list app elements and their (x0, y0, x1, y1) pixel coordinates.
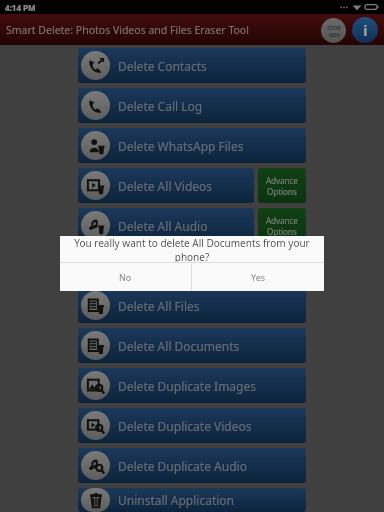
button[interactable]: Delete Duplicate Images (78, 368, 306, 403)
button[interactable]: Delete Call Log (78, 88, 306, 123)
staticText: Delete Call Log (118, 98, 203, 114)
button[interactable]: Advance (258, 168, 306, 203)
staticText: Delete Duplicate Videos (118, 418, 252, 434)
staticText: Options (267, 226, 297, 237)
staticText: Delete Duplicate Images (118, 378, 256, 394)
staticText: You really want to delete All Documents … (60, 236, 324, 262)
staticText: Delete WhatsApp Files (118, 138, 244, 154)
staticText: Advance (266, 175, 298, 186)
staticText: Delete All Images (118, 258, 217, 274)
staticText: No (119, 271, 132, 283)
staticText: Delete All Documents (118, 338, 240, 354)
button[interactable]: Delete All Files (78, 288, 306, 323)
button[interactable]: Delete Contacts (78, 48, 306, 83)
staticText: Advance (266, 255, 298, 266)
button[interactable]: Info (352, 17, 378, 43)
staticText: Delete All Videos (118, 178, 213, 194)
staticText: ADS (329, 31, 340, 38)
button[interactable]: Delete All Images (78, 248, 254, 283)
button[interactable]: Advance (258, 208, 306, 243)
staticText: Delete Duplicate Audio (118, 458, 247, 474)
staticText: Options (267, 186, 297, 197)
staticText: Delete All Files (118, 298, 200, 314)
button[interactable]: Advance (258, 248, 306, 283)
button[interactable]: Uninstall Application (78, 488, 306, 512)
staticText: Smart Delete: Photos Videos and Files Er… (6, 23, 249, 37)
staticText: Uninstall Application (118, 492, 235, 508)
staticText: Delete All Audio (118, 218, 208, 234)
staticText: Yes (251, 271, 266, 283)
staticText: 4:14 PM (5, 2, 36, 13)
button[interactable]: Delete All Documents (78, 328, 306, 363)
button[interactable]: Stop Ads (321, 18, 346, 43)
button[interactable]: Delete Duplicate Videos (78, 408, 306, 443)
button[interactable]: Delete WhatsApp Files (78, 128, 306, 163)
button[interactable]: No (60, 263, 191, 291)
button[interactable]: Delete All Audio (78, 208, 254, 243)
button[interactable]: Delete Duplicate Audio (78, 448, 306, 483)
button[interactable]: Delete All Videos (78, 168, 254, 203)
staticText: i (363, 20, 368, 40)
staticText: Advance (266, 215, 298, 226)
staticText: Delete Contacts (118, 58, 207, 74)
staticText: STOP (327, 24, 341, 31)
button[interactable]: Yes (192, 263, 324, 291)
